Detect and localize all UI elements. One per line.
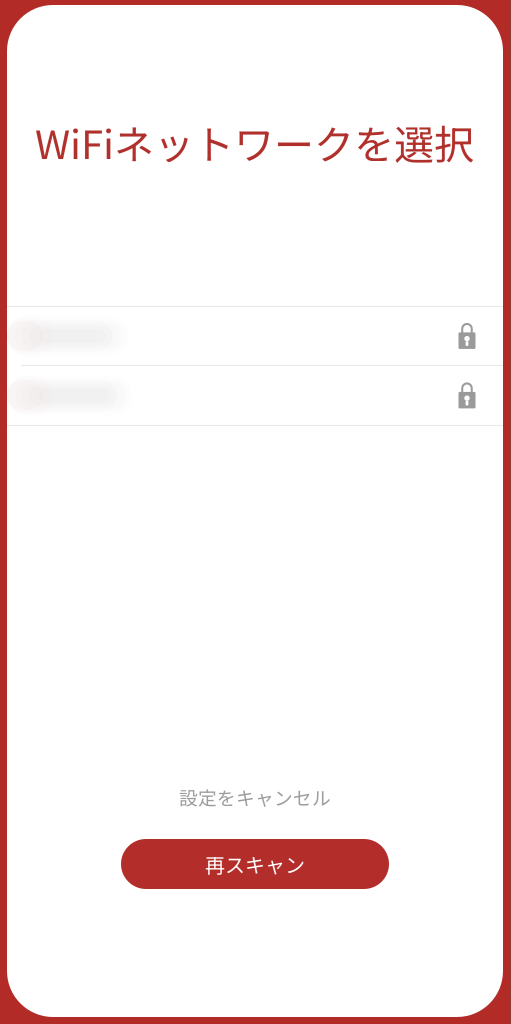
button[interactable]: 再スキャン xyxy=(121,839,389,889)
staticText: WiFiネットワークを選択 xyxy=(35,113,474,171)
button[interactable]: Wi-Fi network, secured xyxy=(7,366,503,425)
staticText: 再スキャン xyxy=(205,849,305,878)
button[interactable]: Wi-Fi network, secured xyxy=(7,307,503,365)
button[interactable]: 設定をキャンセル xyxy=(7,782,503,812)
staticText: 設定をキャンセル xyxy=(179,783,331,810)
